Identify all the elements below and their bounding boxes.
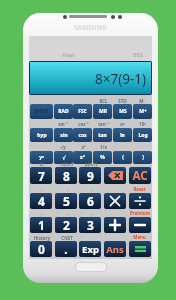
staticText: SAMSUNG (74, 23, 107, 32)
staticText: 0 (38, 241, 45, 257)
button[interactable]: 0 (30, 241, 52, 257)
staticText: tan⁻¹ (98, 121, 109, 127)
button[interactable]: 8 (55, 167, 77, 184)
button[interactable]: sin (54, 128, 73, 142)
button[interactable]: Minus (129, 217, 151, 233)
staticText: 8 (63, 168, 70, 184)
button[interactable]: Backspace (104, 167, 126, 184)
staticText: hyp (37, 132, 47, 139)
staticText: cos (78, 132, 87, 139)
button[interactable]: FSE (73, 104, 92, 119)
button[interactable]: 6 (79, 193, 101, 209)
button[interactable]: AC (129, 167, 151, 184)
staticText: 7 (38, 168, 45, 184)
staticText: Reset (133, 186, 146, 192)
staticText: sin (60, 132, 68, 139)
staticText: c(n,r) (61, 161, 73, 167)
staticText: yˣ (39, 154, 44, 161)
staticText: x³ (81, 144, 86, 150)
staticText: √ (62, 155, 66, 161)
staticText: Exp (82, 243, 99, 256)
button[interactable]: MS (113, 104, 132, 119)
button[interactable]: ( (113, 151, 132, 164)
button[interactable]: % (93, 151, 112, 164)
button[interactable]: M+ (133, 104, 152, 119)
staticText: Log (138, 132, 148, 139)
button[interactable]: RAD (54, 104, 73, 119)
staticText: Menu (133, 234, 146, 240)
button[interactable]: Ans (104, 241, 126, 257)
staticText: · (66, 187, 68, 193)
staticText: MR (99, 108, 107, 115)
button[interactable]: √ (54, 151, 73, 164)
staticText: π! (39, 161, 44, 167)
button[interactable]: hyp (30, 128, 53, 142)
staticText: p(n,r) (85, 161, 97, 167)
staticText: · (41, 187, 43, 193)
button[interactable]: Exp (79, 241, 101, 257)
staticText: 1/x (100, 144, 107, 150)
staticText: M+ (139, 108, 147, 115)
staticText: 3 (87, 217, 94, 233)
staticText: RAD (58, 108, 69, 115)
button[interactable]: Equals (129, 241, 151, 257)
staticText: % (100, 154, 105, 161)
staticText: eˣ (120, 121, 125, 127)
button[interactable]: Divide (129, 193, 151, 209)
button[interactable]: Log (133, 128, 152, 142)
button[interactable]: 9 (79, 167, 101, 184)
staticText: x² (80, 154, 85, 161)
button[interactable]: x² (73, 151, 92, 164)
button[interactable]: 4 (30, 193, 52, 209)
button[interactable]: MR (93, 104, 112, 119)
staticText: √y (60, 144, 66, 150)
staticText: MS (119, 108, 127, 115)
staticText: ( (122, 154, 124, 161)
staticText: CNST (61, 235, 73, 241)
button[interactable]: Plus (104, 217, 126, 233)
staticText: STO (118, 98, 127, 104)
staticText: 2 (63, 217, 70, 233)
button[interactable]: cos (73, 128, 92, 142)
staticText: · (41, 211, 43, 217)
button[interactable]: SHIFT (30, 104, 53, 119)
staticText: Premium (130, 210, 150, 216)
button[interactable]: ln (113, 128, 132, 142)
staticText: History (34, 235, 50, 241)
button[interactable]: . (55, 241, 77, 257)
staticText: Ans (106, 243, 124, 256)
staticText: · (66, 211, 68, 217)
staticText: 5 (63, 193, 70, 209)
button[interactable]: ) (133, 151, 152, 164)
staticText: Float (62, 52, 75, 59)
button[interactable]: yˣ (30, 151, 53, 164)
staticText: ln (120, 132, 125, 139)
staticText: cos⁻¹ (78, 121, 89, 127)
staticText: 9 (87, 168, 94, 184)
staticText: AC (132, 168, 148, 184)
staticText: ) (142, 154, 144, 161)
staticText: SHIFT (34, 108, 49, 115)
staticText: · (90, 211, 92, 217)
staticText: sin⁻¹ (58, 121, 68, 127)
button[interactable]: Multiply (104, 193, 126, 209)
staticText: 10ˣ (139, 121, 146, 127)
button[interactable]: 5 (55, 193, 77, 209)
staticText: M- (139, 98, 145, 104)
staticText: tan (98, 132, 107, 139)
button[interactable]: tan (93, 128, 112, 142)
staticText: · (90, 187, 92, 193)
staticText: RCL (99, 98, 108, 104)
staticText: DEG (133, 52, 144, 59)
button[interactable]: 2 (55, 217, 77, 233)
button[interactable]: 1 (30, 217, 52, 233)
staticText: 6 (87, 193, 94, 209)
staticText: FSE (78, 108, 87, 115)
button[interactable]: 7 (30, 167, 52, 184)
staticText: . (64, 241, 68, 257)
staticText: 1 (38, 217, 45, 233)
staticText: 4 (38, 193, 45, 209)
staticText: 8×7(9-1) (95, 70, 147, 88)
button[interactable]: 3 (79, 217, 101, 233)
